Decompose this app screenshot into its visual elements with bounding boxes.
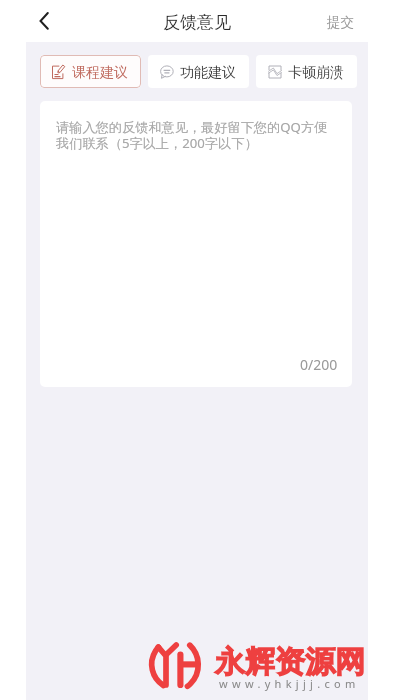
staticText: 提交 [327,14,354,31]
staticText: 卡顿崩溃 [288,64,344,82]
staticText: 课程建议 [72,64,128,82]
staticText: 永辉资源网 [215,643,365,681]
button[interactable]: 卡顿崩溃 [256,55,357,88]
staticText: 0/200 [300,355,338,374]
staticText: 功能建议 [180,64,236,82]
button[interactable]: Back [26,6,56,36]
staticText: www.yhkjjj.com [219,676,360,691]
button[interactable]: 请输入您的反馈和意见，最好留下您的QQ方便我们联系（5字以上，200字以下） [40,101,352,387]
button[interactable]: 课程建议 [40,55,141,88]
staticText: 请输入您的反馈和意见，最好留下您的QQ方便我们联系（5字以上，200字以下） [56,118,338,152]
button[interactable]: 功能建议 [148,55,249,88]
button[interactable]: 提交 [321,5,360,38]
staticText: 反馈意见 [163,12,231,33]
